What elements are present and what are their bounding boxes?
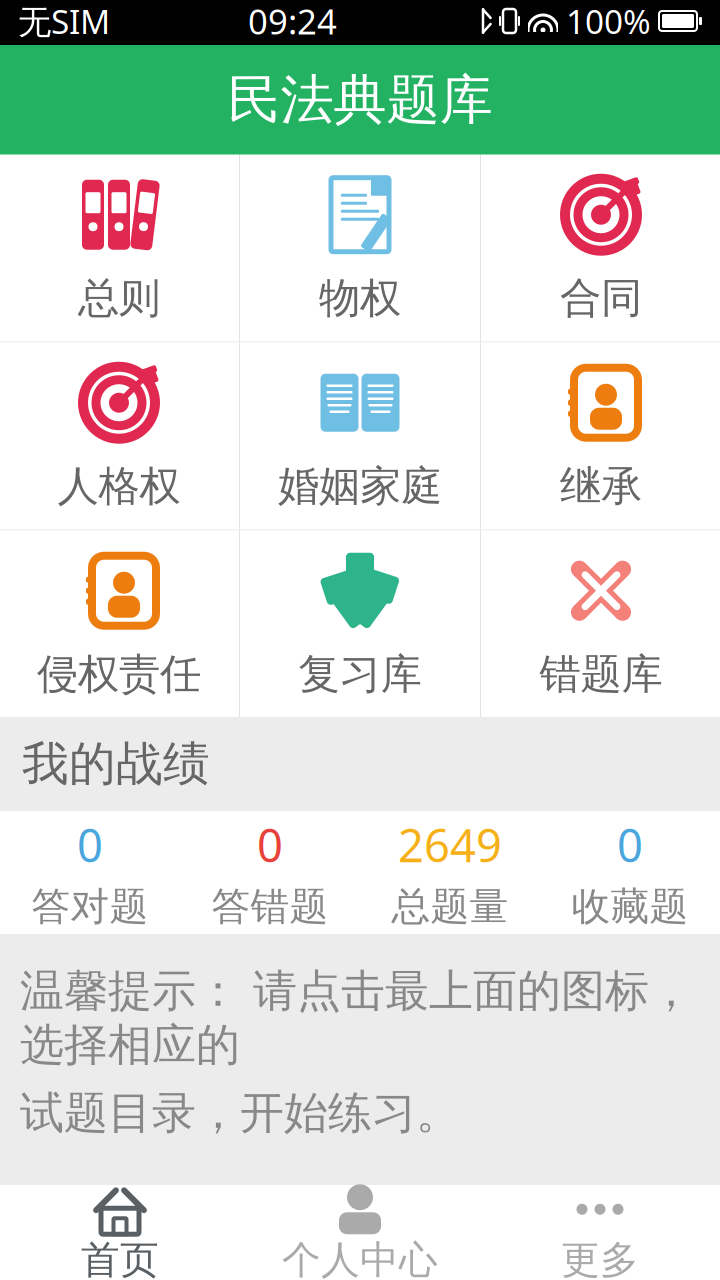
- button[interactable]: 总则: [0, 154, 239, 341]
- button[interactable]: 侵权责任: [0, 530, 239, 717]
- staticText: 0: [617, 815, 643, 875]
- staticText: 个人中心: [282, 1236, 438, 1280]
- staticText: 我的战绩: [22, 735, 210, 793]
- button[interactable]: 物权: [240, 154, 480, 341]
- staticText: 侵权责任: [37, 649, 201, 699]
- staticText: 民法典题库: [227, 67, 492, 133]
- staticText: 2649: [398, 815, 502, 875]
- button[interactable]: 人格权: [0, 342, 239, 529]
- staticText: 100%: [566, 0, 651, 43]
- button[interactable]: 合同: [481, 154, 720, 341]
- staticText: 收藏题: [571, 883, 688, 930]
- staticText: 试题目录，开始练习。: [20, 1086, 460, 1140]
- staticText: 错题库: [539, 649, 662, 699]
- staticText: 继承: [560, 461, 642, 511]
- staticText: 总则: [78, 273, 160, 323]
- staticText: 物权: [319, 273, 401, 323]
- staticText: 无SIM: [18, 0, 110, 43]
- staticText: 温馨提示： 请点击最上面的图标，选择相应的: [20, 964, 693, 1072]
- button[interactable]: 个人中心: [240, 1185, 480, 1280]
- staticText: 0: [77, 815, 103, 875]
- staticText: 首页: [81, 1236, 159, 1280]
- staticText: 总题量: [391, 883, 508, 930]
- staticText: 09:24: [248, 0, 337, 44]
- staticText: 答错题: [211, 883, 328, 930]
- staticText: 答对题: [31, 883, 148, 930]
- button[interactable]: 婚姻家庭: [240, 342, 480, 529]
- staticText: 合同: [560, 273, 642, 323]
- staticText: 更多: [561, 1236, 639, 1280]
- staticText: 人格权: [57, 461, 180, 511]
- staticText: 0: [257, 815, 283, 875]
- button[interactable]: 错题库: [481, 530, 720, 717]
- staticText: 婚姻家庭: [278, 461, 442, 511]
- button[interactable]: 首页: [0, 1185, 240, 1280]
- button[interactable]: 继承: [481, 342, 720, 529]
- button[interactable]: 复习库: [240, 530, 480, 717]
- button[interactable]: 更多: [480, 1185, 720, 1280]
- staticText: 复习库: [298, 649, 421, 699]
